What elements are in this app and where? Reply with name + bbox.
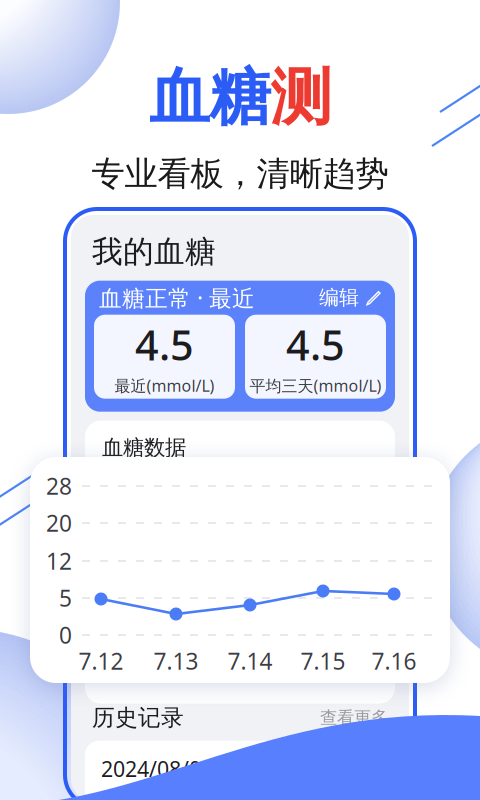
button[interactable]: 血糖正常 · 最近 (85, 281, 395, 315)
staticText: 查看更多 (320, 707, 388, 728)
staticText: 7.13 (153, 646, 198, 676)
staticText: 5 (59, 583, 72, 613)
staticText: 0 (59, 620, 72, 650)
staticText: 7.16 (371, 646, 416, 676)
staticText: 7.14 (227, 646, 272, 676)
staticText: 最近(mmol/L) (114, 375, 214, 396)
staticText: 7.15 (300, 646, 345, 676)
staticText: 4.5 (135, 317, 194, 372)
staticText: 我的血糖 (92, 233, 216, 271)
staticText: 测 (270, 60, 331, 135)
staticText: 编辑 (319, 285, 359, 310)
staticText: 2024/08/08 (101, 755, 213, 783)
staticText: 血糖 (148, 60, 270, 135)
staticText: 平均三天(mmol/L) (249, 375, 381, 396)
staticText: 12 (46, 546, 72, 576)
staticText: 血糖数据 (102, 435, 186, 461)
staticText: 20 (46, 508, 72, 538)
staticText: 专业看板，清晰趋势 (91, 153, 388, 194)
staticText: 血糖正常 · 最近 (99, 283, 255, 313)
staticText: 历史记录 (92, 704, 184, 731)
staticText: 7.12 (78, 646, 123, 676)
staticText: 28 (46, 471, 72, 501)
staticText: 4.5 (286, 317, 345, 372)
